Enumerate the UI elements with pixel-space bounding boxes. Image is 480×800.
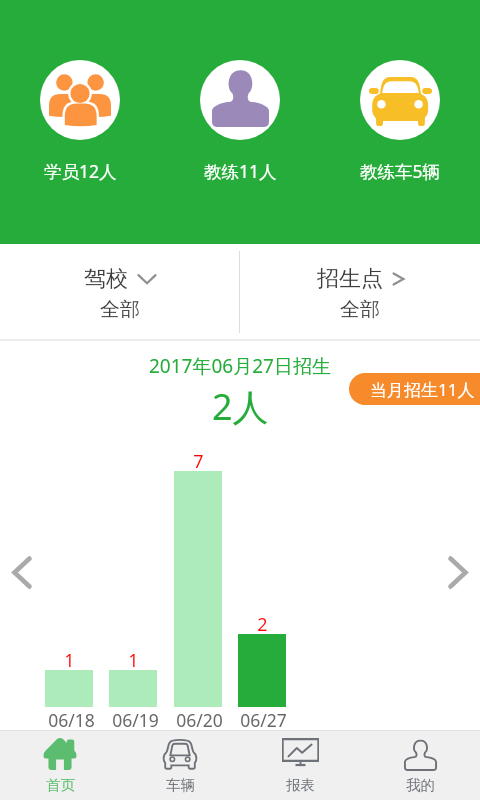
button[interactable]: 车辆 bbox=[120, 731, 240, 800]
button[interactable]: 报表 bbox=[240, 731, 360, 800]
staticText: 1 bbox=[128, 648, 139, 673]
staticText: 教练11人 bbox=[204, 159, 277, 183]
staticText: 学员12人 bbox=[44, 159, 117, 183]
staticText: 车辆 bbox=[166, 776, 195, 794]
staticText: 06/20 bbox=[176, 708, 223, 732]
staticText: 06/19 bbox=[112, 708, 159, 732]
button[interactable]: 当月招生11人 bbox=[349, 373, 480, 405]
staticText: 首页 bbox=[46, 776, 75, 794]
button[interactable]: 教练11人 bbox=[180, 52, 300, 192]
staticText: 1 bbox=[64, 648, 75, 673]
button[interactable]: 学员12人 bbox=[20, 52, 140, 192]
staticText: 2 bbox=[257, 612, 268, 637]
button[interactable]: 首页 bbox=[0, 731, 120, 800]
button[interactable]: 驾校 bbox=[10, 252, 230, 334]
staticText: 7 bbox=[193, 449, 204, 474]
staticText: 2017年06月27日招生 bbox=[149, 353, 331, 379]
button[interactable]: 我的 bbox=[360, 731, 480, 800]
staticText: 当月招生11人 bbox=[370, 378, 475, 401]
button[interactable]: Previous week bbox=[0, 549, 45, 595]
staticText: 全部 bbox=[100, 297, 140, 322]
staticText: 驾校 bbox=[84, 265, 128, 293]
button[interactable]: 招生点 bbox=[251, 252, 471, 334]
staticText: 招生点 bbox=[317, 265, 383, 293]
staticText: 教练车5辆 bbox=[360, 159, 441, 183]
staticText: 06/18 bbox=[48, 708, 95, 732]
staticText: 我的 bbox=[406, 776, 435, 794]
staticText: 2人 bbox=[212, 382, 269, 431]
button[interactable]: 教练车5辆 bbox=[340, 52, 460, 192]
button[interactable]: Next week bbox=[435, 549, 480, 595]
staticText: 全部 bbox=[340, 297, 380, 322]
staticText: 06/27 bbox=[240, 708, 287, 732]
staticText: 报表 bbox=[286, 776, 315, 794]
